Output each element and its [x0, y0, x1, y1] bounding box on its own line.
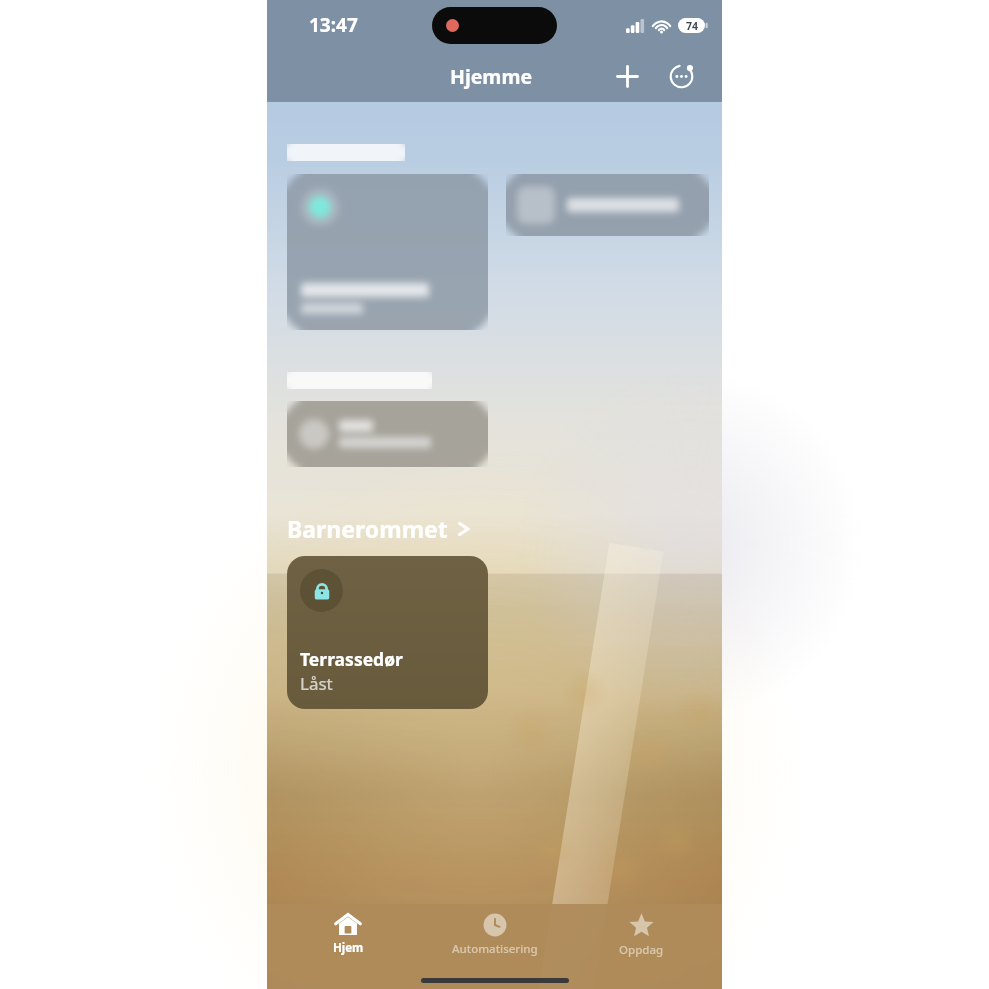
staticText: Terrassedør: [300, 647, 403, 671]
staticText: 13:47: [309, 12, 358, 38]
button[interactable]: [287, 401, 488, 467]
staticText: Automatisering: [452, 941, 538, 957]
staticText: Hjem: [333, 940, 364, 956]
button[interactable]: More options: [662, 57, 700, 95]
button[interactable]: Barnerommet: [287, 513, 472, 544]
button[interactable]: Automatisering: [430, 912, 560, 957]
staticText: Barnerommet: [287, 513, 448, 544]
staticText: Oppdag: [619, 942, 664, 958]
button[interactable]: [287, 174, 488, 330]
button[interactable]: [506, 174, 709, 236]
button[interactable]: Terrassedør: [287, 556, 488, 709]
button[interactable]: Oppdag: [576, 912, 706, 958]
staticText: 74: [686, 19, 699, 33]
button[interactable]: Add: [608, 57, 646, 95]
button[interactable]: Hjem: [283, 912, 413, 956]
staticText: Hjemme: [450, 63, 533, 90]
staticText: Låst: [300, 672, 333, 695]
